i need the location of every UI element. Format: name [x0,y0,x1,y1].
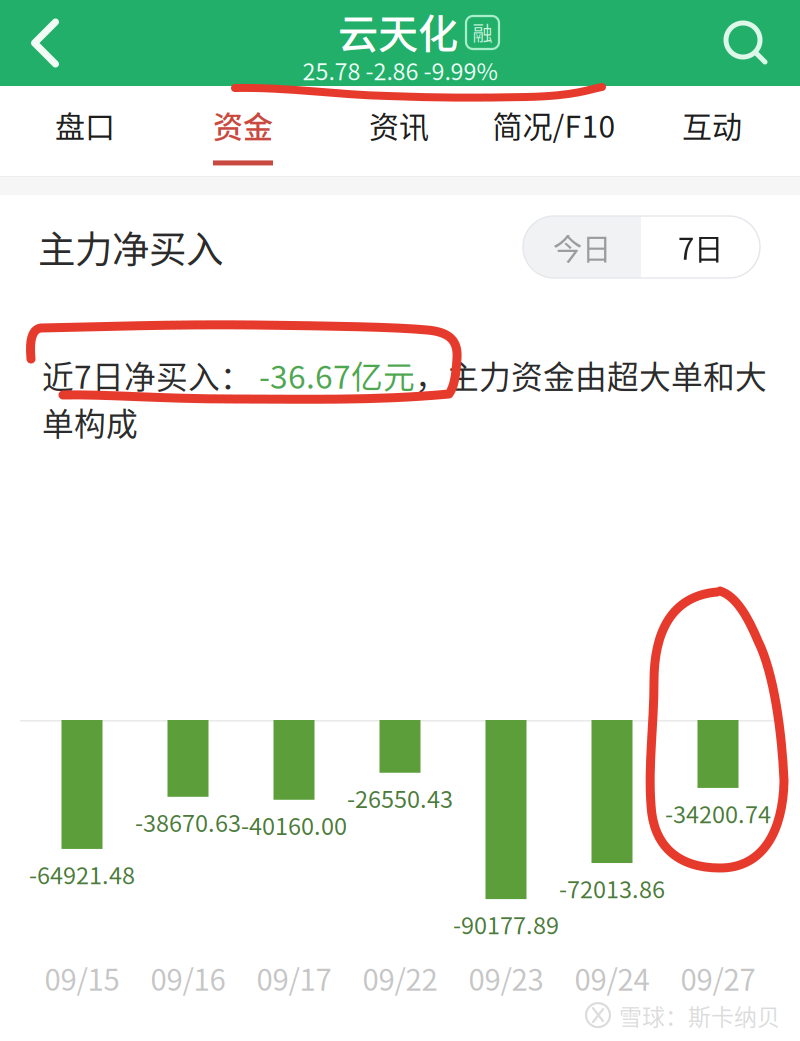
staticText: 互动 [682,103,742,146]
staticText: 今日 [553,226,611,268]
staticText: 云天化 [338,2,458,60]
staticText: 09/17 [256,957,331,999]
staticText: 09/24 [574,957,649,999]
staticText: 简况/F10 [492,103,615,146]
button[interactable]: Back [0,0,88,86]
staticText: 近7日净买入： [42,352,252,398]
staticText: 单构成 [42,399,138,445]
staticText: -36.67亿元 [252,352,415,398]
staticText: -72013.86 [559,871,665,905]
staticText: 09/23 [468,957,543,999]
staticText: 主力净买入 [38,220,223,274]
staticText: 融 [472,18,492,47]
staticText: -40160.00 [241,808,347,842]
staticText: 09/16 [150,957,225,999]
staticText: 25.78 -2.86 -9.99% [302,53,497,87]
staticText: 7日 [678,226,723,268]
staticText: -34200.74 [665,796,771,830]
staticText: 资讯 [369,103,429,146]
staticText: 盘口 [55,103,115,146]
staticText: 09/22 [362,957,437,999]
button[interactable]: 互动 [637,86,787,176]
staticText: -90177.89 [453,907,559,941]
button[interactable]: 今日 [523,216,641,278]
staticText: -64921.48 [29,857,135,891]
button[interactable]: 7日 [641,216,760,278]
button[interactable]: Search [696,0,796,86]
staticText: ，主力资金由超大单和大 [415,352,767,398]
staticText: 09/27 [680,957,755,999]
button[interactable]: 资金 [168,86,318,176]
staticText: 资金 [213,103,273,146]
button[interactable]: 盘口 [10,86,160,176]
staticText: -38670.63 [135,805,241,839]
staticText: -26550.43 [347,781,453,815]
button[interactable]: 资讯 [324,86,474,176]
button[interactable]: 简况/F10 [479,86,629,176]
staticText: 09/15 [44,957,119,999]
staticText: 雪球：斯卡纳贝 [619,999,780,1032]
